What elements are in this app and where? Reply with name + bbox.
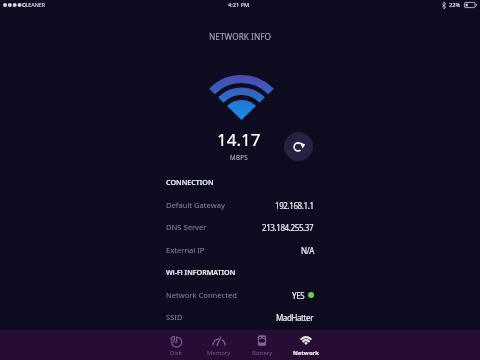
staticText: CONNECTION bbox=[166, 177, 214, 187]
button[interactable]: Default Gateway bbox=[0, 194, 480, 216]
button[interactable]: DNS Server bbox=[0, 216, 480, 238]
staticText: Network Connected bbox=[166, 290, 237, 300]
staticText: External IP bbox=[166, 245, 205, 255]
staticText: MBPS bbox=[230, 153, 248, 161]
button[interactable]: External IP bbox=[0, 239, 480, 261]
staticText: 192.168.1.1 bbox=[275, 200, 314, 211]
button[interactable]: Refresh bbox=[284, 132, 313, 161]
staticText: Wi-Fi INFORMATION bbox=[166, 267, 236, 277]
staticText: 4:21 PM bbox=[228, 1, 250, 9]
staticText: NETWORK INFO bbox=[209, 31, 272, 42]
staticText: SSID bbox=[166, 312, 183, 322]
staticText: 22% bbox=[449, 1, 461, 9]
staticText: 14.17 bbox=[217, 128, 261, 148]
staticText: YES bbox=[292, 290, 305, 301]
staticText: Disk bbox=[170, 349, 182, 357]
button[interactable]: Battery bbox=[241, 330, 283, 360]
button[interactable]: Network bbox=[285, 330, 327, 360]
button[interactable]: SSID bbox=[0, 306, 480, 328]
staticText: DNS Server bbox=[166, 222, 207, 232]
staticText: MadHatter bbox=[276, 312, 314, 323]
staticText: Default Gateway bbox=[166, 200, 225, 210]
button[interactable]: Network Connected bbox=[0, 284, 480, 306]
button[interactable]: Memory bbox=[198, 330, 240, 360]
staticText: CLEANER bbox=[22, 1, 46, 8]
staticText: Battery bbox=[252, 349, 273, 357]
staticText: N/A bbox=[301, 245, 314, 256]
staticText: Memory bbox=[207, 349, 231, 357]
staticText: Network bbox=[293, 349, 319, 357]
staticText: 213.184.255.37 bbox=[262, 222, 314, 233]
button[interactable]: Disk bbox=[155, 330, 197, 360]
